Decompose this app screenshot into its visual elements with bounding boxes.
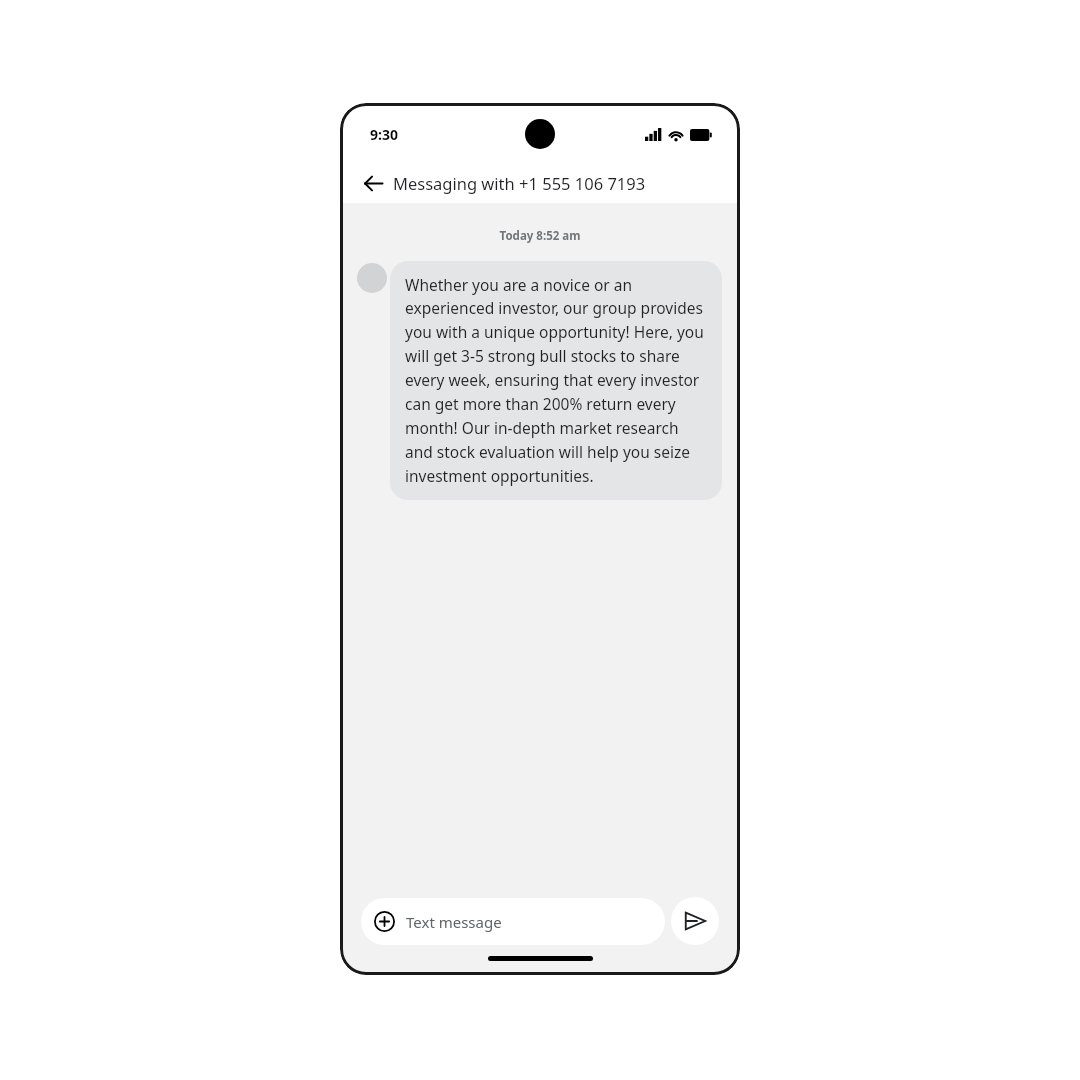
staticText: Whether you are a novice or an experienc… <box>405 274 707 487</box>
button[interactable]: Send <box>671 897 719 945</box>
button[interactable]: Back <box>353 163 393 203</box>
staticText: Today 8:52 am <box>340 228 740 244</box>
button[interactable]: Text message <box>361 898 665 945</box>
staticText: Messaging with +1 555 106 7193 <box>393 172 646 194</box>
staticText: Text message <box>406 912 502 932</box>
staticText: 9:30 <box>370 125 398 144</box>
button[interactable]: Whether you are a novice or an experienc… <box>390 261 722 500</box>
